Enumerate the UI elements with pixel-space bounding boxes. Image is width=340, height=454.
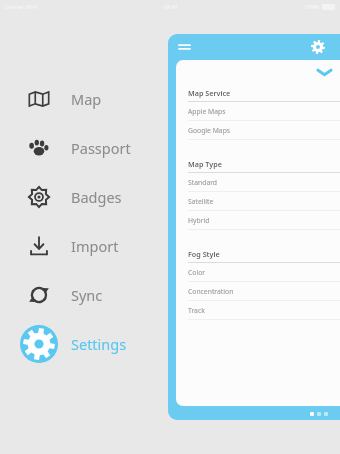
staticText: Passport	[71, 138, 131, 158]
staticText: Track	[188, 306, 205, 315]
staticText: Fog Style	[188, 249, 220, 259]
staticText: Map Service	[188, 88, 231, 98]
staticText: Concentration	[188, 287, 234, 296]
staticText: Google Maps	[188, 126, 231, 135]
button[interactable]: Google Maps	[176, 121, 340, 140]
button[interactable]: Sync	[0, 276, 168, 314]
staticText: Satellite	[188, 197, 214, 206]
button[interactable]: Apple Maps	[176, 102, 340, 121]
staticText: Map	[71, 89, 102, 109]
staticText: Color	[188, 268, 206, 277]
button[interactable]: Import	[0, 227, 168, 265]
staticText: Standard	[188, 178, 218, 187]
staticText: 09:41	[164, 3, 179, 11]
staticText: Sync	[71, 285, 103, 305]
staticText: Carrier Wi-Fi	[5, 3, 39, 11]
staticText: Hybrid	[188, 216, 210, 225]
button[interactable]: Map	[0, 80, 168, 118]
button[interactable]: Concentration	[176, 282, 340, 301]
button[interactable]: Settings	[0, 325, 168, 363]
button[interactable]: Badges	[0, 178, 168, 216]
button[interactable]: Settings	[307, 36, 329, 58]
button[interactable]: Track	[176, 301, 340, 320]
button[interactable]: Color	[176, 263, 340, 282]
staticText: Apple Maps	[188, 107, 226, 116]
staticText: Settings	[71, 334, 127, 354]
staticText: Import	[71, 236, 119, 256]
staticText: 100%	[305, 3, 320, 11]
staticText: Badges	[71, 187, 122, 207]
button[interactable]: Menu	[175, 38, 193, 56]
button[interactable]: Hybrid	[176, 211, 340, 230]
staticText: Map Type	[188, 159, 222, 169]
button[interactable]: Satellite	[176, 192, 340, 211]
button[interactable]: Passport	[0, 129, 168, 167]
button[interactable]: Standard	[176, 173, 340, 192]
